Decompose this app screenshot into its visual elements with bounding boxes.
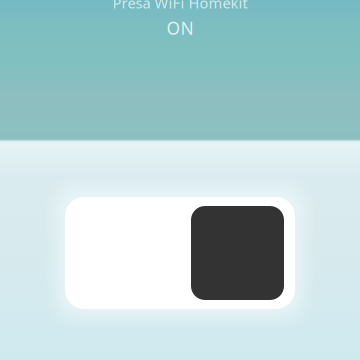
staticText: ON <box>166 16 193 39</box>
staticText: Presa WiFi Homekit <box>112 0 247 12</box>
button[interactable]: Toggle switch <box>65 197 295 309</box>
